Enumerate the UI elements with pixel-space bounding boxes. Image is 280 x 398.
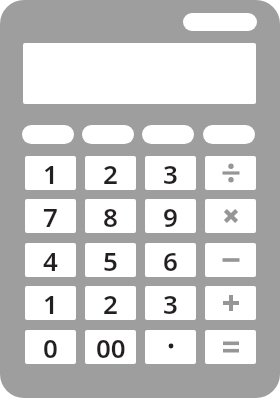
staticText: 5 xyxy=(103,243,118,277)
button[interactable]: 5 xyxy=(85,243,136,277)
button[interactable]: 6 xyxy=(145,243,196,277)
button[interactable]: 3 xyxy=(145,286,196,320)
button[interactable]: 9 xyxy=(145,199,196,233)
staticText: 2 xyxy=(103,156,118,190)
staticText: 3 xyxy=(163,286,178,320)
button[interactable]: 2 xyxy=(85,286,136,320)
button[interactable]: 3 xyxy=(145,156,196,190)
button[interactable]: 2 xyxy=(85,156,136,190)
staticText: 9 xyxy=(163,199,178,233)
button[interactable] xyxy=(82,125,134,144)
button[interactable] xyxy=(203,125,255,144)
button[interactable]: 1 xyxy=(25,156,76,190)
button[interactable]: 0 xyxy=(25,330,76,364)
staticText: 7 xyxy=(43,199,58,233)
button[interactable] xyxy=(22,125,74,144)
button[interactable]: 7 xyxy=(25,199,76,233)
staticText: 4 xyxy=(43,243,58,277)
staticText: 1 xyxy=(43,156,58,190)
button[interactable] xyxy=(205,199,256,233)
button[interactable]: 00 xyxy=(85,330,136,364)
staticText: 6 xyxy=(163,243,178,277)
button[interactable] xyxy=(142,125,194,144)
button[interactable] xyxy=(205,243,256,277)
button[interactable] xyxy=(205,156,256,190)
button[interactable] xyxy=(145,330,196,364)
button[interactable]: 1 xyxy=(25,286,76,320)
button[interactable]: 8 xyxy=(85,199,136,233)
staticText: 3 xyxy=(163,156,178,190)
button[interactable] xyxy=(205,330,256,364)
button[interactable]: 4 xyxy=(25,243,76,277)
staticText: 2 xyxy=(103,286,118,320)
staticText: 00 xyxy=(96,330,126,364)
staticText: 1 xyxy=(43,286,58,320)
button[interactable] xyxy=(205,286,256,320)
staticText: 0 xyxy=(43,330,58,364)
staticText: 8 xyxy=(103,199,118,233)
